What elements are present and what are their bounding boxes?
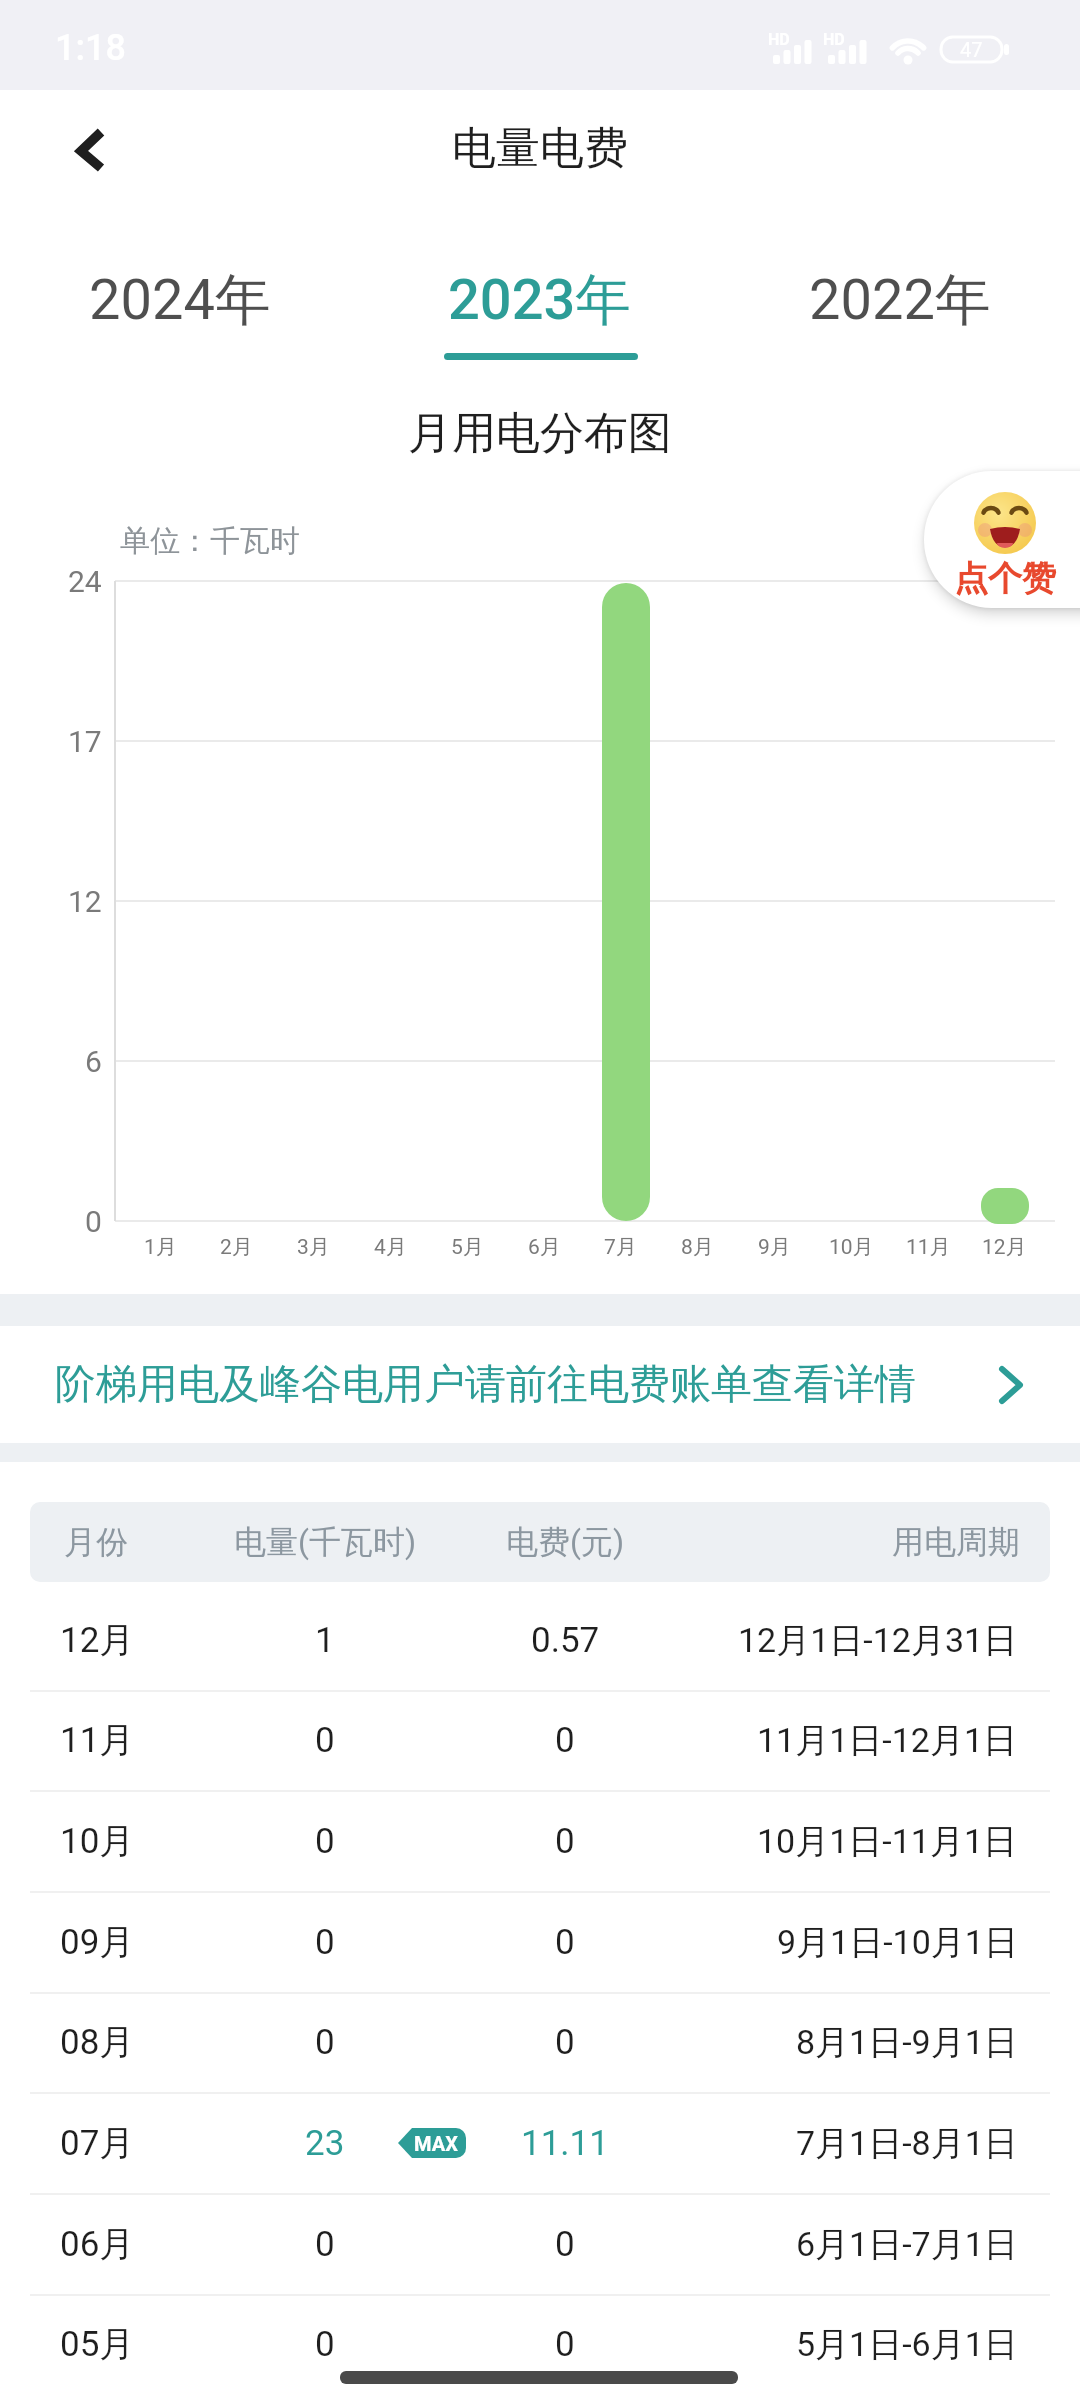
staticText: 1 <box>315 1620 335 1661</box>
staticText: 11月 <box>906 1234 951 1260</box>
button[interactable] <box>0 2194 1080 2294</box>
staticText: MAX <box>414 2132 458 2155</box>
staticText: 0 <box>555 2324 575 2365</box>
staticText: 2024年 <box>89 265 271 336</box>
staticText: 11.11 <box>521 2123 609 2164</box>
staticText: 10月 <box>829 1234 874 1260</box>
button[interactable] <box>0 1791 1080 1891</box>
staticText: 11月1日-12月1日 <box>757 1719 1018 1762</box>
staticText: 0 <box>555 1922 575 1963</box>
staticText: 09月 <box>60 1920 135 1964</box>
staticText: 08月 <box>60 2020 135 2064</box>
staticText: 47 <box>960 38 983 61</box>
staticText: 17 <box>68 724 102 759</box>
staticText: 1月 <box>144 1234 177 1260</box>
staticText: 2022年 <box>809 265 991 336</box>
staticText: 0 <box>315 1720 335 1761</box>
staticText: 9月1日-10月1日 <box>777 1921 1018 1964</box>
staticText: 6月 <box>528 1234 561 1260</box>
staticText: 0 <box>85 1204 102 1239</box>
staticText: 点个赞 <box>954 557 1056 600</box>
staticText: 4月 <box>374 1234 407 1260</box>
staticText: 月份 <box>64 1522 128 1562</box>
staticText: 7月 <box>604 1234 637 1260</box>
button[interactable] <box>0 1590 1080 1690</box>
staticText: 0 <box>555 1821 575 1862</box>
staticText: 0 <box>315 2324 335 2365</box>
button[interactable] <box>0 1892 1080 1992</box>
staticText: 0.57 <box>531 1620 600 1661</box>
staticText: 07月 <box>60 2121 135 2165</box>
staticText: 用电周期 <box>892 1522 1020 1562</box>
staticText: 11月 <box>60 1718 135 1762</box>
staticText: 10月 <box>60 1819 135 1863</box>
staticText: 阶梯用电及峰谷电用户请前往电费账单查看详情 <box>55 1359 916 1411</box>
staticText: 6 <box>85 1044 102 1079</box>
staticText: 0 <box>315 1922 335 1963</box>
button[interactable] <box>0 1992 1080 2092</box>
button[interactable]: 2023年 <box>360 240 720 360</box>
staticText: 7月1日-8月1日 <box>796 2122 1018 2165</box>
button[interactable] <box>60 115 130 185</box>
button[interactable]: 2024年 <box>0 240 360 360</box>
staticText: 0 <box>315 2022 335 2063</box>
staticText: 0 <box>555 1720 575 1761</box>
staticText: 8月1日-9月1日 <box>796 2021 1018 2064</box>
staticText: 0 <box>315 2224 335 2265</box>
staticText: 3月 <box>297 1234 330 1260</box>
staticText: 电费(元) <box>506 1522 625 1562</box>
staticText: 1:18 <box>55 27 126 69</box>
staticText: 24 <box>68 564 102 599</box>
staticText: 2月 <box>220 1234 253 1260</box>
staticText: 0 <box>555 2224 575 2265</box>
staticText: 10月1日-11月1日 <box>757 1820 1018 1863</box>
staticText: 5月 <box>451 1234 484 1260</box>
staticText: 12月 <box>60 1618 135 1662</box>
staticText: 月用电分布图 <box>408 406 672 461</box>
staticText: 电量电费 <box>452 121 628 176</box>
staticText: 12月1日-12月31日 <box>738 1619 1018 1662</box>
button[interactable] <box>0 2093 1080 2193</box>
staticText: 23 <box>305 2123 345 2164</box>
staticText: 12月 <box>982 1234 1027 1260</box>
staticText: HD <box>768 30 790 49</box>
staticText: 电量(千瓦时) <box>234 1522 417 1562</box>
staticText: 0 <box>555 2022 575 2063</box>
button[interactable]: 2022年 <box>720 240 1080 360</box>
staticText: 05月 <box>60 2322 135 2366</box>
button[interactable] <box>0 2294 1080 2394</box>
staticText: 8月 <box>681 1234 714 1260</box>
staticText: 9月 <box>758 1234 791 1260</box>
staticText: 12 <box>68 884 102 919</box>
button[interactable] <box>0 1690 1080 1790</box>
staticText: HD <box>823 30 845 49</box>
staticText: 2023年 <box>448 265 632 336</box>
button[interactable]: 阶梯用电及峰谷电用户请前往电费账单查看详情 <box>0 1326 1080 1443</box>
staticText: 06月 <box>60 2222 135 2266</box>
button[interactable]: 点个赞 <box>924 471 1080 608</box>
staticText: 单位：千瓦时 <box>120 522 300 560</box>
staticText: 5月1日-6月1日 <box>796 2323 1018 2366</box>
staticText: 0 <box>315 1821 335 1862</box>
staticText: 6月1日-7月1日 <box>796 2223 1018 2266</box>
